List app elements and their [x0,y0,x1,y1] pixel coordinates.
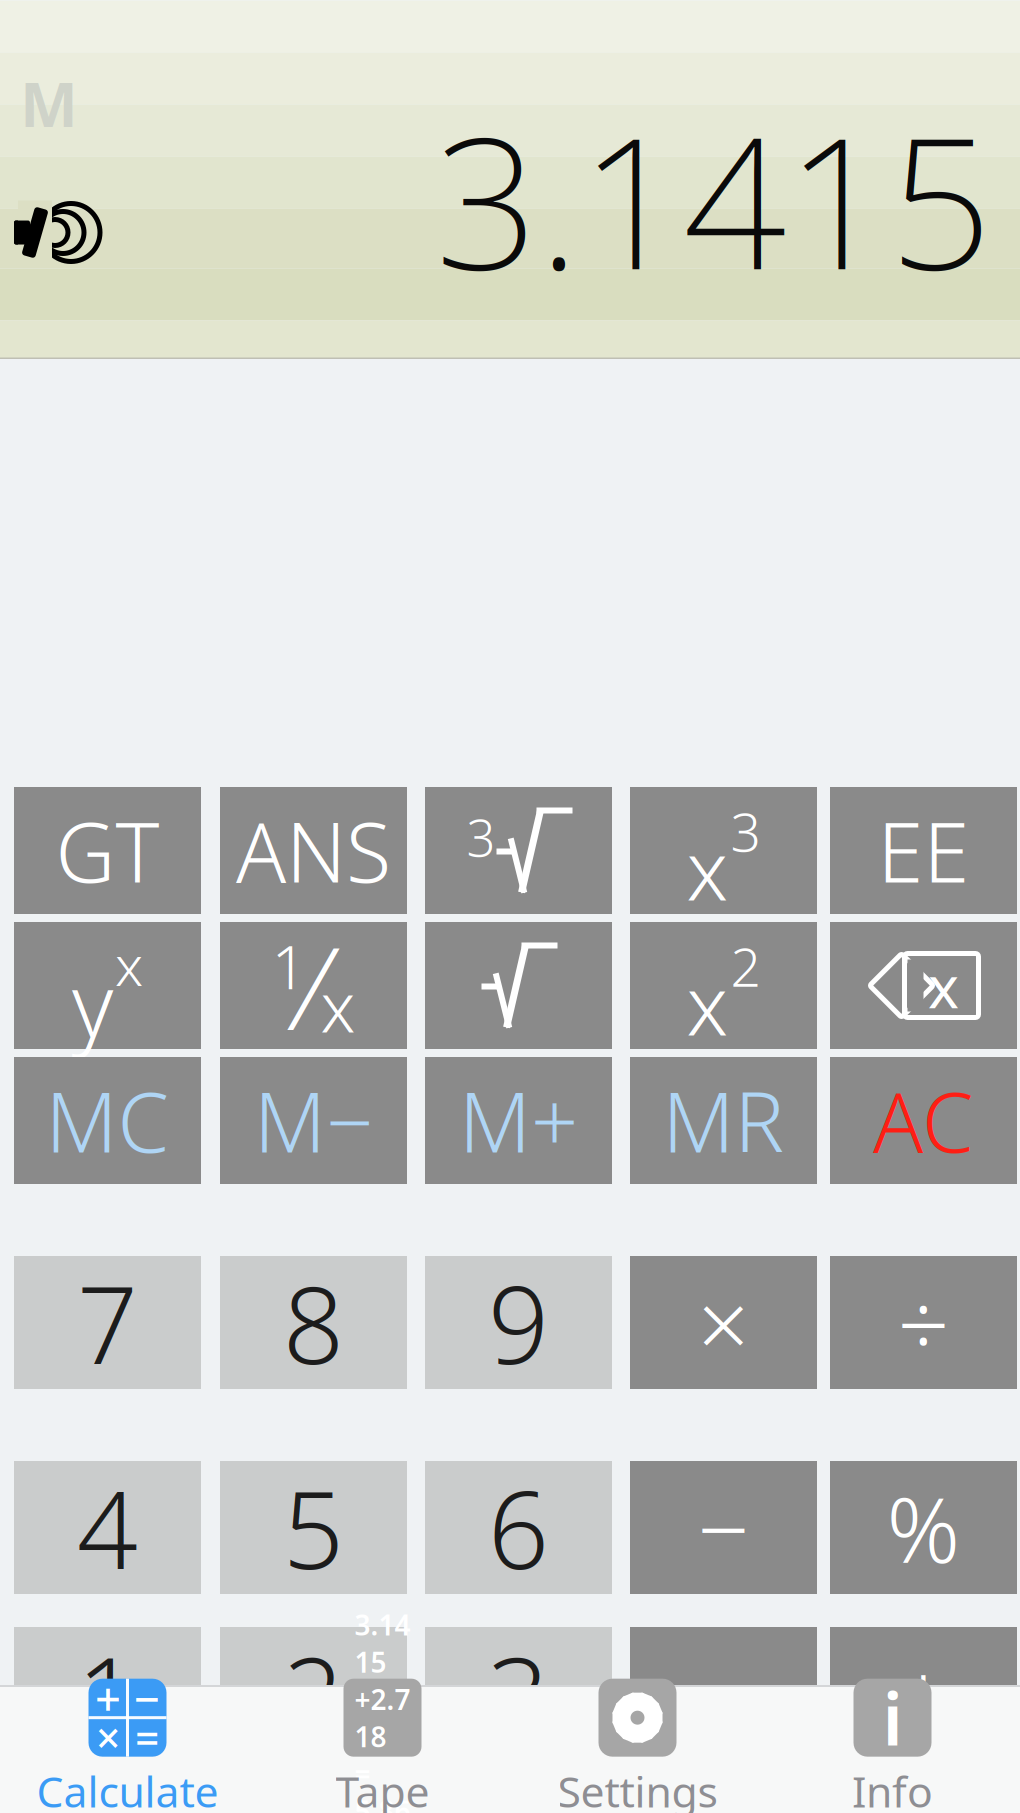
button[interactable]: 8 [220,1256,407,1389]
staticText: ÷ [897,1262,949,1383]
staticText: 1 [271,925,306,1006]
staticText: Settings [557,1763,717,1813]
staticText: +2.718 [354,1680,410,1755]
button[interactable]: MC [14,1057,201,1184]
staticText: 4 [77,1457,138,1598]
staticText: x [686,949,728,1058]
staticText: x [320,959,355,1052]
staticText: 6 [488,1457,549,1598]
staticText: M− [254,1066,373,1175]
button[interactable]: Settings [510,1685,765,1813]
staticText: × [96,1709,120,1765]
button[interactable]: × [630,1256,817,1389]
button[interactable]: GT [14,787,201,914]
button[interactable]: x squared [630,922,817,1049]
staticText: ± [897,1633,949,1754]
button[interactable]: + [630,1627,817,1813]
button[interactable]: AC [830,1057,1017,1184]
button[interactable]: ANS [220,787,407,914]
staticText: 5 [283,1457,344,1598]
staticText: + [95,1668,121,1728]
staticText: Info [852,1763,933,1813]
button[interactable]: Equals [830,1794,1017,1813]
staticText: + [694,1710,752,1813]
staticText: EE [877,796,969,905]
staticText: Calculate [36,1763,218,1813]
staticText: Tape [335,1763,429,1813]
staticText: 1 [77,1623,138,1764]
button[interactable]: . [425,1794,612,1813]
staticText: 2 [730,931,760,1001]
staticText: − [697,1467,749,1588]
button[interactable]: 0 [14,1794,201,1813]
button[interactable]: 1 [14,1627,201,1760]
staticText: ⁄ [306,909,320,1062]
staticText: y [72,945,113,1062]
staticText: 7 [77,1252,138,1393]
staticText: 3 [466,803,495,871]
button[interactable]: ± [830,1627,1017,1760]
staticText: 2 [283,1623,344,1764]
staticText: 8 [283,1252,344,1393]
button[interactable]: + [0,1685,255,1813]
staticText: i [882,1670,902,1765]
staticText: M [20,62,78,144]
staticText: × [697,1262,749,1383]
button[interactable]: 3 [425,1627,612,1760]
staticText: GT [55,796,159,905]
staticText: 00 [252,1790,374,1813]
staticText: 0 [77,1790,138,1813]
staticText: ANS [236,796,391,905]
staticText: MC [45,1066,169,1175]
button[interactable]: i [765,1685,1020,1813]
staticText: M+ [459,1066,578,1175]
button[interactable]: Square root [425,922,612,1049]
button[interactable]: Speak result [10,200,80,264]
button[interactable]: 3.1415 [255,1685,510,1813]
staticText: AC [873,1066,974,1175]
button[interactable]: 6 [425,1461,612,1594]
staticText: 9 [488,1252,549,1393]
staticText: 3.1415 [435,78,992,319]
staticText: 3 [730,796,760,866]
staticText: x [686,814,728,923]
button[interactable]: x cubed [630,787,817,914]
staticText: 3 [488,1623,549,1764]
button[interactable]: MR [630,1057,817,1184]
button[interactable]: M+ [425,1057,612,1184]
button[interactable]: Backspace [830,922,1017,1049]
staticText: = 5.86 [354,1755,410,1813]
staticText: 3.1415 [354,1606,410,1680]
button[interactable]: y to the power of x [14,922,201,1049]
button[interactable]: One over x [220,922,407,1049]
button[interactable]: EE [830,787,1017,914]
staticText: MR [662,1066,784,1175]
staticText: = [135,1709,159,1765]
button[interactable]: 5 [220,1461,407,1594]
staticText: % [886,1467,960,1588]
button[interactable]: 7 [14,1256,201,1389]
button[interactable]: M− [220,1057,407,1184]
staticText: x [115,927,143,1001]
button[interactable]: 2 [220,1627,407,1760]
staticText: − [134,1668,160,1728]
staticText: x [928,946,959,1024]
button[interactable]: % [830,1461,1017,1594]
button[interactable]: 9 [425,1256,612,1389]
button[interactable]: 00 [220,1794,407,1813]
button[interactable]: ÷ [830,1256,1017,1389]
button[interactable]: − [630,1461,817,1594]
button[interactable]: 4 [14,1461,201,1594]
button[interactable]: Cube root [425,787,612,914]
